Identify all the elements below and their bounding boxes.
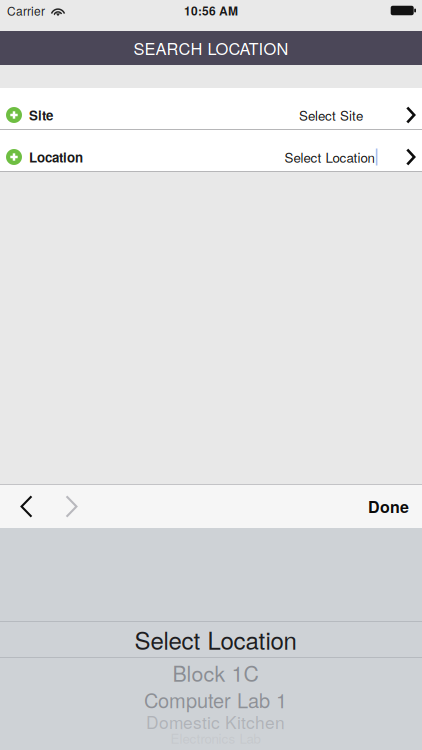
staticText: Select Site — [299, 105, 363, 125]
staticText: Select Location — [285, 147, 375, 167]
staticText: Select Location — [134, 622, 296, 657]
staticText: Electronics Lab — [170, 728, 260, 748]
staticText: Computer Lab 1 — [144, 685, 287, 714]
staticText: Block 1C — [172, 657, 258, 688]
staticText: SEARCH LOCATION — [133, 36, 288, 60]
staticText: Location — [29, 147, 83, 167]
button[interactable]: Block 1C — [0, 658, 422, 687]
button[interactable]: Site — [0, 88, 422, 130]
button[interactable]: Location — [0, 130, 422, 172]
button[interactable]: Computer Lab 1 — [0, 687, 422, 712]
staticText: Site — [29, 105, 53, 125]
button[interactable]: Previous field — [4, 485, 49, 528]
staticText: Domestic Kitchen — [146, 709, 285, 734]
staticText: 10:56 AM — [184, 2, 238, 19]
button[interactable]: Domestic Kitchen — [0, 712, 422, 731]
button[interactable]: Select Location — [0, 622, 422, 657]
button[interactable]: Done — [356, 485, 421, 528]
staticText: Done — [368, 495, 409, 518]
staticText: Carrier — [7, 2, 45, 19]
button[interactable]: Next field — [49, 485, 94, 528]
